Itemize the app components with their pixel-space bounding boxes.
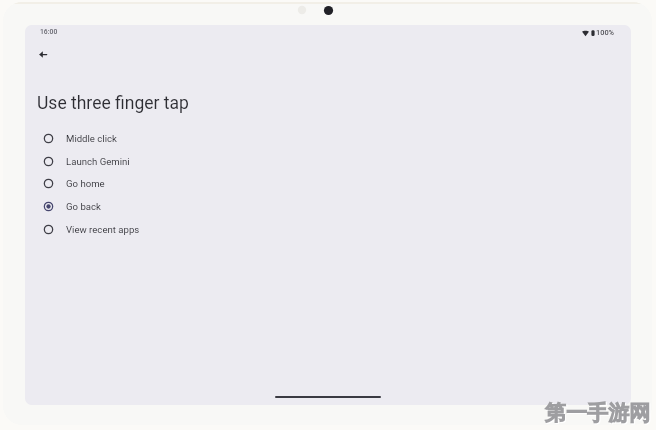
button[interactable]: Middle click bbox=[25, 127, 631, 150]
button[interactable]: Launch Gemini bbox=[25, 150, 631, 173]
button[interactable]: Back bbox=[25, 36, 61, 72]
staticText: 100% bbox=[596, 28, 615, 37]
staticText: View recent apps bbox=[66, 224, 140, 235]
staticText: 16:00 bbox=[40, 28, 58, 36]
staticText: 第一手游网 bbox=[546, 401, 651, 427]
staticText: Launch Gemini bbox=[66, 156, 130, 167]
button[interactable]: View recent apps bbox=[25, 218, 631, 241]
button[interactable]: Go back bbox=[25, 195, 631, 218]
staticText: Go home bbox=[66, 178, 105, 189]
button[interactable]: Go home bbox=[25, 172, 631, 195]
staticText: 第一手游网 bbox=[545, 400, 650, 426]
staticText: Go back bbox=[66, 201, 101, 212]
staticText: Use three finger tap bbox=[37, 93, 189, 114]
staticText: Middle click bbox=[66, 133, 117, 144]
